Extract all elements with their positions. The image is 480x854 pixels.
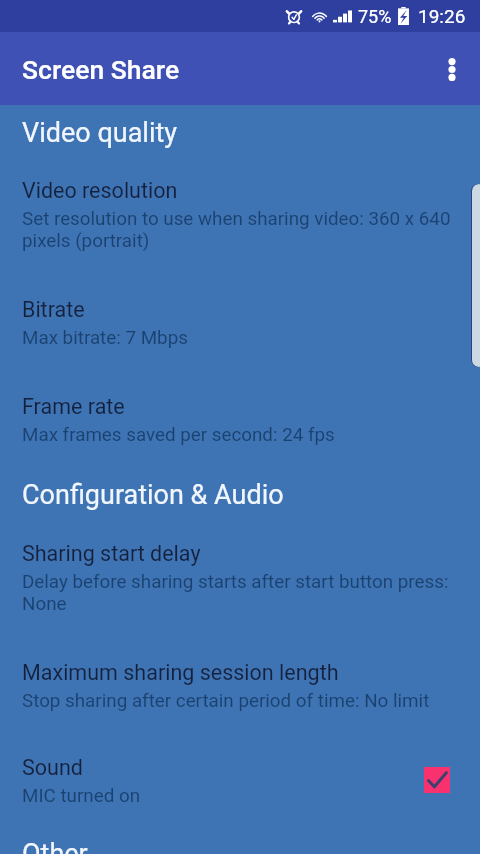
staticText: 75% <box>358 6 392 27</box>
staticText: Video resolution <box>22 178 178 203</box>
button[interactable]: Sound enabled <box>424 767 450 793</box>
staticText: 19:26 <box>418 5 466 27</box>
staticText: Max frames saved per second: 24 fps <box>22 424 335 446</box>
staticText: Configuration & Audio <box>22 479 284 511</box>
button[interactable]: Frame rate <box>0 394 480 446</box>
staticText: Screen Share <box>22 54 180 85</box>
staticText: Sharing start delay <box>22 541 201 566</box>
button[interactable]: More options <box>426 43 478 95</box>
staticText: Maximum sharing session length <box>22 660 339 685</box>
staticText: Max bitrate: 7 Mbps <box>22 327 188 349</box>
staticText: Other <box>22 838 88 854</box>
button[interactable]: Maximum sharing session length <box>0 660 480 712</box>
button[interactable]: Sound <box>0 755 480 807</box>
staticText: Stop sharing after certain period of tim… <box>22 690 430 712</box>
staticText: Frame rate <box>22 394 125 419</box>
staticText: Delay before sharing starts after start … <box>22 571 468 615</box>
button[interactable]: Sharing start delay <box>0 541 480 615</box>
staticText: Sound <box>22 755 83 780</box>
staticText: Bitrate <box>22 297 85 322</box>
button[interactable]: Bitrate <box>0 297 480 349</box>
button[interactable]: Video resolution <box>0 178 480 252</box>
staticText: MIC turned on <box>22 785 141 807</box>
staticText: Set resolution to use when sharing video… <box>22 208 468 252</box>
staticText: Video quality <box>22 117 178 149</box>
